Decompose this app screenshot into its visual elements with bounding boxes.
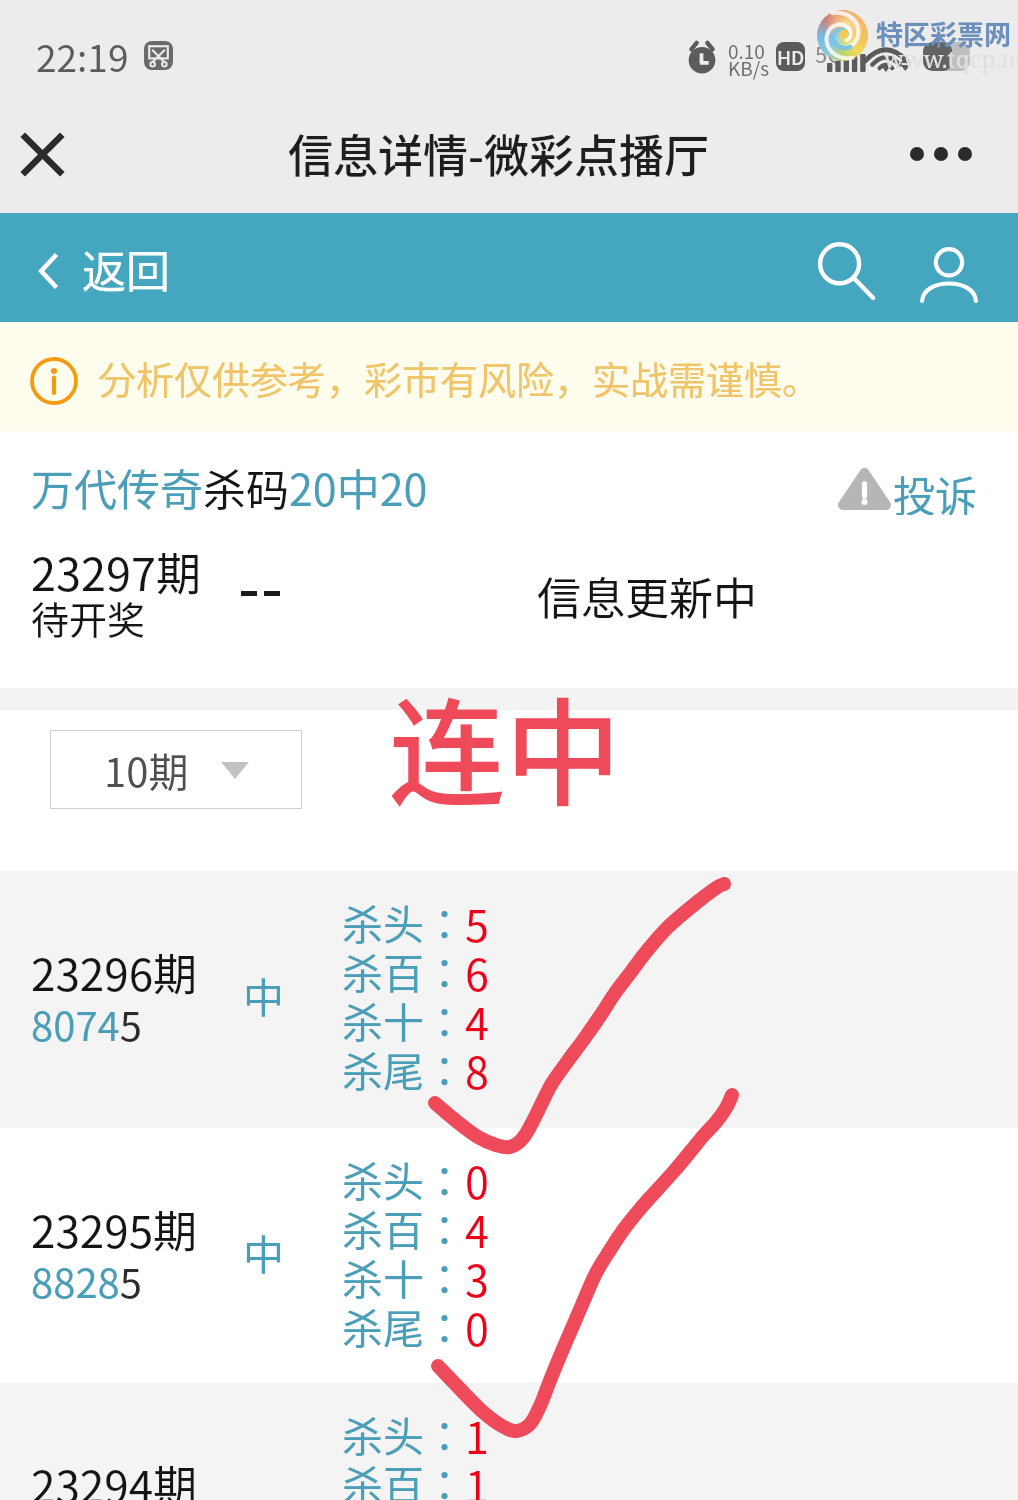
staticText: 1 (465, 1453, 489, 1500)
button[interactable] (0, 871, 1018, 1128)
staticText: 杀百： (342, 1453, 465, 1500)
staticText: 0.10 (728, 37, 765, 65)
staticText: 杀百： (342, 1198, 465, 1257)
staticText: 杀百： (342, 941, 465, 1000)
button[interactable]: Close (6, 118, 78, 190)
staticText: 23297期 (31, 539, 201, 604)
staticText: 杀十： (342, 1247, 465, 1306)
staticText: KB/s (728, 54, 770, 82)
staticText: 4 (465, 990, 489, 1052)
staticText: 3 (465, 1247, 489, 1309)
staticText: 投诉 (893, 463, 978, 515)
staticText: 信息更新中 (537, 564, 757, 628)
button[interactable]: 万代传奇杀码20中20 (31, 456, 428, 518)
staticText: 杀头： (342, 1149, 465, 1208)
staticText: 杀头： (342, 892, 465, 951)
button[interactable] (0, 1383, 1018, 1500)
button[interactable]: More options (895, 118, 987, 190)
staticText: 88285 (31, 1252, 142, 1310)
staticText: 10期 (104, 741, 189, 799)
button[interactable]: 返回 (39, 238, 170, 294)
staticText: 23294期 (31, 1452, 198, 1500)
staticText: 0 (465, 1149, 489, 1211)
staticText: 0 (465, 1296, 489, 1358)
button[interactable]: Search (808, 234, 882, 308)
button[interactable]: Account (913, 238, 985, 310)
staticText: 1 (465, 1404, 489, 1466)
button[interactable]: 10期 (50, 730, 302, 809)
staticText: 中 (243, 965, 284, 1024)
staticText: 待开奖 (31, 590, 146, 645)
button[interactable]: 投诉 (838, 463, 978, 515)
staticText: 22:19 (36, 29, 129, 83)
staticText: 返回 (82, 237, 170, 293)
staticText: 80745 (31, 995, 142, 1053)
staticText: www.tqcp.net (884, 43, 1018, 74)
staticText: 杀尾： (342, 1039, 465, 1098)
staticText: 6 (465, 941, 489, 1003)
staticText: 分析仅供参考，彩市有风险，实战需谨慎。 (98, 350, 821, 405)
staticText: 特区彩票网 (876, 14, 1011, 53)
staticText: 5G (815, 37, 843, 69)
staticText: 杀十： (342, 990, 465, 1049)
staticText: 信息详情-微彩点播厅 (288, 121, 710, 186)
staticText: 5 (465, 892, 489, 954)
staticText: 连中 (389, 661, 621, 829)
staticText: HD (777, 43, 805, 71)
staticText: 23296期 (31, 940, 198, 1004)
staticText: 中 (243, 1222, 284, 1281)
button[interactable] (0, 1128, 1018, 1383)
staticText: 8 (465, 1039, 489, 1101)
staticText: 4 (465, 1198, 489, 1260)
staticText: 杀尾： (342, 1296, 465, 1355)
staticText: 23295期 (31, 1197, 198, 1261)
staticText: 杀头： (342, 1404, 465, 1463)
